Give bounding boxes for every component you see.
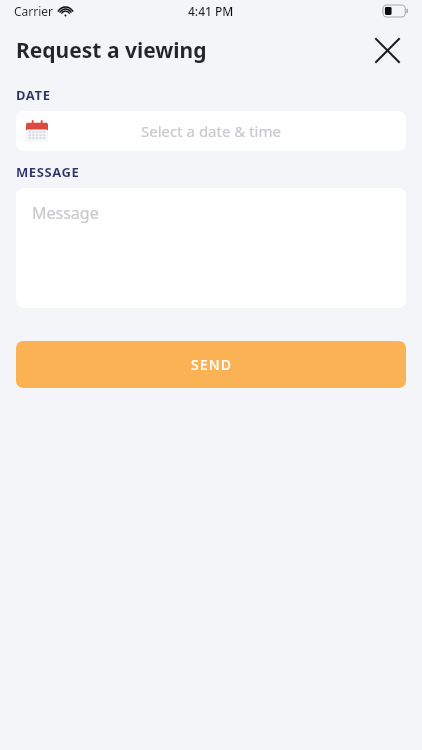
staticText: SEND: [191, 355, 232, 374]
staticText: Select a date & time: [48, 121, 374, 141]
staticText: Request a viewing: [16, 36, 207, 65]
staticText: Message: [32, 202, 99, 224]
button[interactable]: Select a date & time: [16, 111, 406, 151]
button[interactable]: Message: [16, 188, 406, 308]
staticText: Carrier: [14, 3, 54, 19]
button[interactable]: SEND: [16, 341, 406, 388]
button[interactable]: Close: [370, 33, 404, 67]
staticText: DATE: [16, 86, 51, 104]
staticText: MESSAGE: [16, 163, 80, 181]
staticText: 4:41 PM: [188, 3, 234, 19]
